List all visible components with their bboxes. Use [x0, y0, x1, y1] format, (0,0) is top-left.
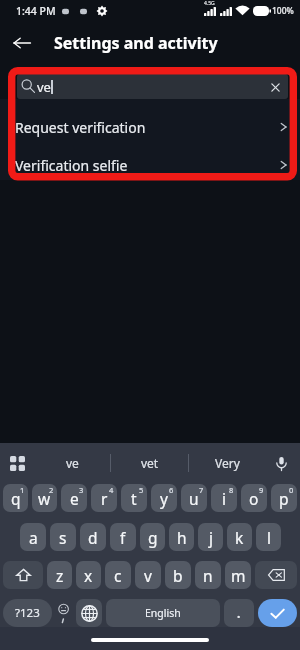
- button[interactable]: i: [211, 484, 237, 512]
- staticText: 4: [109, 485, 114, 495]
- staticText: 1: [20, 485, 25, 495]
- button[interactable]: x: [76, 561, 101, 589]
- staticText: 7: [199, 485, 204, 495]
- staticText: v: [144, 565, 152, 586]
- button[interactable]: .: [224, 599, 254, 627]
- staticText: 1:44 PM: [16, 4, 56, 18]
- staticText: d: [88, 527, 98, 548]
- button[interactable]: Shift: [3, 561, 43, 589]
- button[interactable]: k: [227, 523, 252, 551]
- staticText: z: [56, 565, 64, 586]
- staticText: 100%: [272, 5, 294, 17]
- staticText: p: [279, 488, 289, 509]
- button[interactable]: vet: [111, 443, 188, 483]
- staticText: w: [38, 488, 51, 509]
- button[interactable]: d: [80, 523, 106, 551]
- staticText: Request verification: [15, 118, 146, 137]
- staticText: ?123: [15, 605, 40, 621]
- button[interactable]: f: [110, 523, 136, 551]
- button[interactable]: l: [256, 523, 281, 551]
- button[interactable]: q: [3, 484, 28, 512]
- button[interactable]: Enter: [258, 599, 297, 627]
- button[interactable]: Clear search: [265, 77, 285, 97]
- staticText: e: [70, 488, 79, 509]
- button[interactable]: v: [135, 561, 161, 589]
- button[interactable]: Keyboard menu: [6, 452, 29, 475]
- staticText: 3: [79, 485, 84, 495]
- button[interactable]: o: [241, 484, 267, 512]
- button[interactable]: u: [181, 484, 207, 512]
- staticText: k: [235, 527, 244, 548]
- button[interactable]: z: [47, 561, 72, 589]
- staticText: m: [231, 565, 246, 586]
- button[interactable]: Change language: [76, 599, 102, 627]
- staticText: l: [267, 527, 271, 548]
- staticText: 9: [259, 485, 264, 495]
- button[interactable]: Emoji: [56, 599, 72, 627]
- staticText: 4.5G: [204, 0, 215, 7]
- staticText: f: [120, 527, 126, 548]
- button[interactable]: n: [195, 561, 221, 589]
- button[interactable]: Back: [5, 26, 39, 60]
- button[interactable]: m: [225, 561, 251, 589]
- button[interactable]: Very: [189, 443, 266, 483]
- staticText: n: [203, 565, 213, 586]
- button[interactable]: ve: [17, 74, 288, 99]
- staticText: o: [249, 488, 259, 509]
- staticText: 2: [49, 485, 54, 495]
- staticText: a: [29, 527, 38, 548]
- staticText: t: [131, 488, 137, 509]
- button[interactable]: p: [271, 484, 297, 512]
- staticText: g: [148, 527, 158, 548]
- staticText: c: [114, 565, 122, 586]
- staticText: 8: [229, 485, 234, 495]
- staticText: s: [59, 527, 67, 548]
- button[interactable]: c: [105, 561, 131, 589]
- staticText: j: [209, 527, 213, 548]
- button[interactable]: e: [61, 484, 87, 512]
- button[interactable]: t: [121, 484, 147, 512]
- staticText: h: [177, 527, 187, 548]
- staticText: 5: [139, 485, 144, 495]
- staticText: i: [222, 488, 226, 509]
- button[interactable]: English: [106, 599, 220, 627]
- button[interactable]: ?123: [3, 599, 52, 627]
- staticText: Very: [215, 455, 240, 471]
- staticText: English: [145, 606, 181, 620]
- staticText: 0: [289, 485, 294, 495]
- staticText: y: [160, 488, 168, 509]
- button[interactable]: ve: [34, 443, 110, 483]
- staticText: x: [84, 565, 93, 586]
- button[interactable]: y: [151, 484, 177, 512]
- button[interactable]: Voice input: [270, 452, 292, 474]
- staticText: u: [189, 488, 199, 509]
- button[interactable]: h: [169, 523, 194, 551]
- staticText: ve: [37, 78, 51, 96]
- staticText: r: [101, 488, 108, 509]
- button[interactable]: g: [140, 523, 165, 551]
- staticText: Verification selfie: [15, 156, 128, 175]
- button[interactable]: s: [50, 523, 76, 551]
- button[interactable]: r: [91, 484, 117, 512]
- button[interactable]: Request verification: [0, 108, 300, 146]
- button[interactable]: a: [20, 523, 46, 551]
- button[interactable]: j: [198, 523, 223, 551]
- button[interactable]: Backspace: [255, 561, 297, 589]
- button[interactable]: b: [165, 561, 191, 589]
- staticText: .: [237, 605, 241, 621]
- button[interactable]: Verification selfie: [0, 146, 300, 184]
- staticText: 6: [169, 485, 174, 495]
- staticText: ve: [66, 455, 79, 471]
- button[interactable]: w: [32, 484, 57, 512]
- staticText: Settings and activity: [54, 32, 218, 54]
- staticText: q: [11, 488, 21, 509]
- staticText: b: [173, 565, 183, 586]
- staticText: vet: [141, 455, 159, 471]
